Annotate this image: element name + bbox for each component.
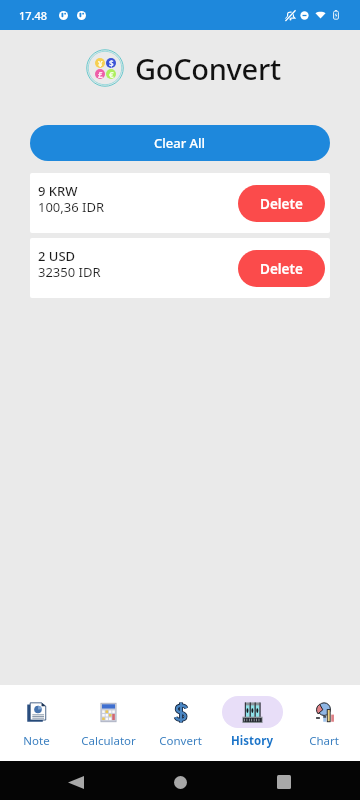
staticText: £ <box>98 69 103 79</box>
staticText: € <box>109 69 114 79</box>
staticText: 32350 IDR <box>38 263 101 281</box>
button[interactable]: History <box>216 685 288 761</box>
button[interactable]: Calculator <box>72 685 144 761</box>
button[interactable]: Convert <box>144 685 216 761</box>
button[interactable]: Recents <box>268 769 300 795</box>
staticText: History <box>231 733 273 749</box>
staticText: 17.48 <box>19 8 48 23</box>
staticText: Convert <box>159 733 202 749</box>
staticText: Delete <box>260 195 303 213</box>
staticText: GoConvert <box>135 49 281 88</box>
button[interactable]: Delete <box>238 250 325 287</box>
staticText: ¥ <box>98 58 103 68</box>
staticText: 9 KRW <box>38 182 78 200</box>
staticText: $ <box>109 58 114 68</box>
button[interactable]: Chart <box>288 685 360 761</box>
staticText: Delete <box>260 260 303 278</box>
staticText: 2 USD <box>38 247 76 265</box>
button[interactable]: Back <box>60 769 92 795</box>
staticText: 100,36 IDR <box>38 198 105 216</box>
staticText: Clear All <box>154 134 206 152</box>
staticText: Note <box>23 733 50 749</box>
button[interactable]: Delete <box>238 185 325 222</box>
staticText: Chart <box>309 733 339 749</box>
button[interactable]: Note <box>0 685 72 761</box>
staticText: Calculator <box>81 733 136 749</box>
button[interactable]: Home <box>164 769 196 795</box>
button[interactable]: Clear All <box>30 125 330 161</box>
